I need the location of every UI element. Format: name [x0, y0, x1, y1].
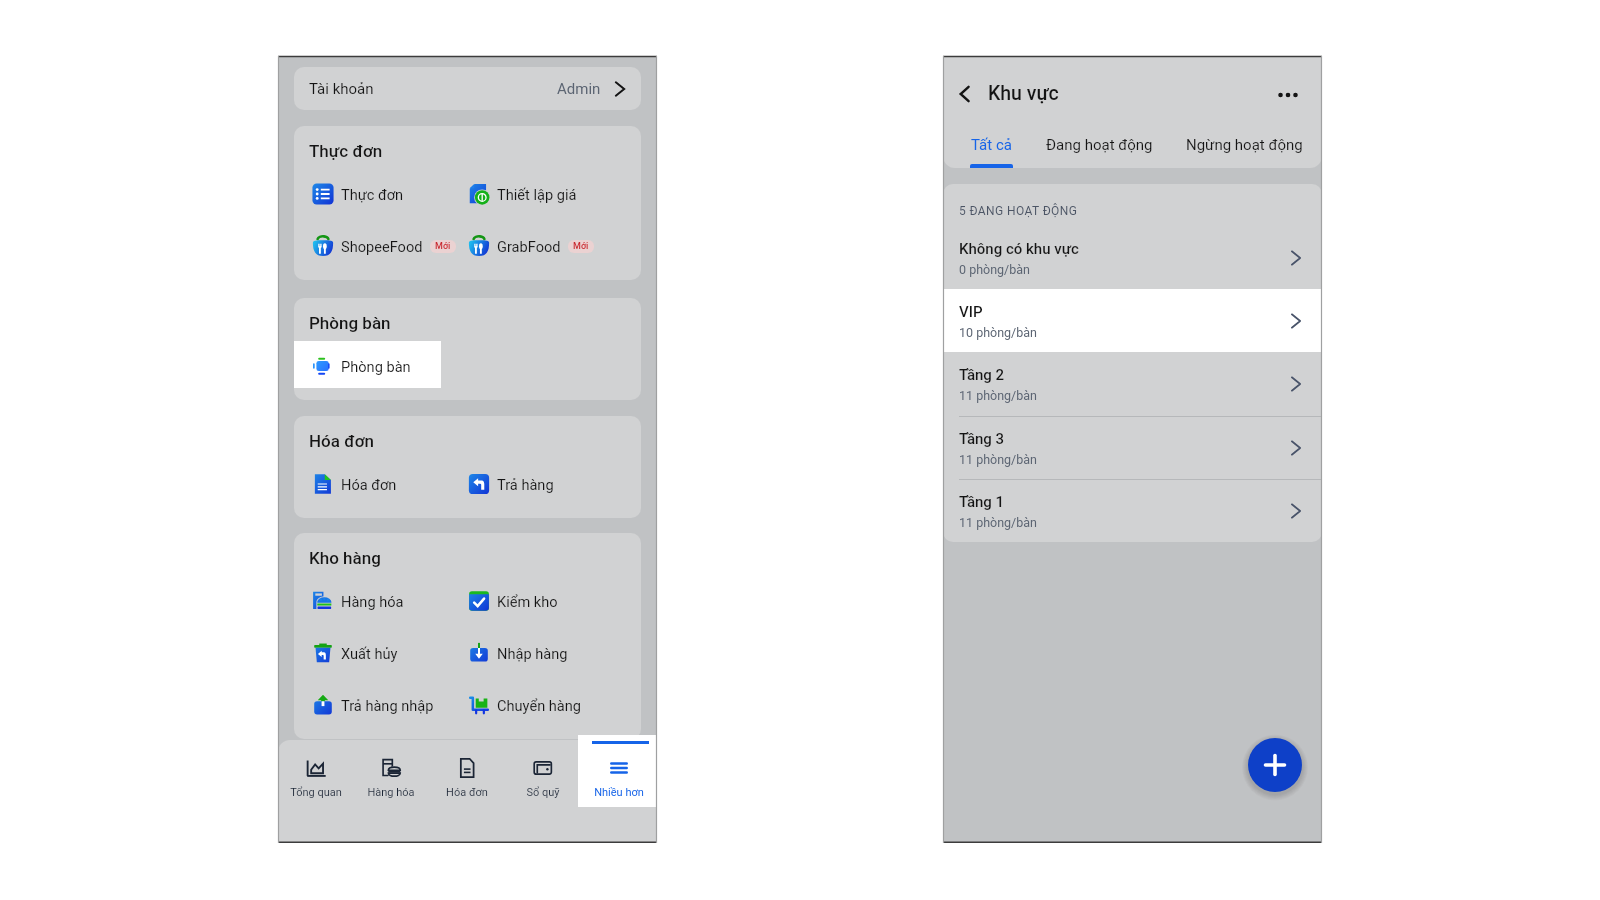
- staticText: Trả hàng: [497, 476, 554, 493]
- staticText: Hàng hóa: [341, 593, 404, 610]
- button[interactable]: Sổ quỹ: [505, 740, 581, 812]
- button[interactable]: Nhập hàng: [450, 627, 641, 679]
- button[interactable]: Thực đơn: [294, 168, 450, 220]
- staticText: Nhiều hơn: [594, 786, 644, 799]
- button[interactable]: Hàng hóa: [294, 575, 450, 627]
- button[interactable]: Phòng bàn: [294, 340, 450, 392]
- button[interactable]: Tài khoản: [294, 67, 641, 110]
- staticText: Tầng 2: [959, 366, 1005, 384]
- button[interactable]: Tổng quan: [278, 740, 353, 812]
- staticText: Xuất hủy: [341, 645, 398, 662]
- button[interactable]: Xuất hủy: [294, 627, 450, 679]
- staticText: Đang hoạt động: [1046, 136, 1153, 154]
- button[interactable]: Trả hàng: [450, 458, 641, 510]
- button[interactable]: Nhiều hơn: [581, 740, 657, 812]
- button[interactable]: Chuyển hàng: [450, 679, 641, 731]
- staticText: Admin: [557, 80, 601, 98]
- button[interactable]: Tầng 1: [943, 479, 1322, 542]
- staticText: 5 ĐANG HOẠT ĐỘNG: [959, 204, 1078, 218]
- staticText: Tầng 3: [959, 430, 1005, 448]
- staticText: Kho hàng: [309, 548, 381, 568]
- staticText: Trả hàng nhập: [341, 697, 434, 714]
- button[interactable]: Kiểm kho: [450, 575, 641, 627]
- staticText: Tầng 1: [959, 493, 1005, 511]
- button[interactable]: Hóa đơn: [294, 458, 450, 510]
- staticText: 10 phòng/bàn: [959, 325, 1037, 340]
- button[interactable]: Tầng 3: [943, 416, 1322, 479]
- button[interactable]: ShopeeFood: [294, 220, 450, 272]
- staticText: Không có khu vực: [959, 240, 1079, 258]
- staticText: GrabFood: [497, 238, 561, 255]
- staticText: Phòng bàn: [341, 358, 411, 375]
- button[interactable]: Trả hàng nhập: [294, 679, 450, 731]
- staticText: Chuyển hàng: [497, 697, 582, 714]
- button[interactable]: Ngừng hoạt động: [1186, 136, 1303, 154]
- staticText: Sổ quỹ: [526, 786, 560, 799]
- staticText: Tất cả: [971, 136, 1012, 154]
- button[interactable]: Không có khu vực: [943, 226, 1322, 289]
- staticText: Thực đơn: [309, 141, 383, 161]
- staticText: Hóa đơn: [309, 431, 374, 451]
- button[interactable]: Tất cả: [971, 136, 1012, 154]
- button[interactable]: Thiết lập giá: [450, 168, 641, 220]
- staticText: Hóa đơn: [446, 786, 488, 799]
- staticText: Nhập hàng: [497, 645, 568, 662]
- button[interactable]: More options: [1273, 80, 1303, 110]
- staticText: Mới: [435, 241, 451, 252]
- staticText: Phòng bàn: [309, 313, 391, 333]
- staticText: Khu vực: [988, 82, 1059, 105]
- staticText: 11 phòng/bàn: [959, 452, 1037, 467]
- button[interactable]: Tầng 2: [943, 352, 1322, 415]
- button[interactable]: Hóa đơn: [429, 740, 505, 812]
- button[interactable]: VIP: [943, 289, 1322, 352]
- staticText: Kiểm kho: [497, 593, 558, 610]
- button[interactable]: Đang hoạt động: [1046, 136, 1153, 154]
- staticText: Hóa đơn: [341, 476, 397, 493]
- button[interactable]: Add: [1248, 738, 1302, 792]
- staticText: Ngừng hoạt động: [1186, 136, 1303, 154]
- staticText: Thiết lập giá: [497, 186, 577, 203]
- staticText: Tài khoản: [309, 80, 374, 98]
- staticText: 11 phòng/bàn: [959, 388, 1037, 403]
- staticText: ShopeeFood: [341, 238, 423, 255]
- staticText: Hàng hóa: [367, 786, 415, 799]
- button[interactable]: GrabFood: [450, 220, 641, 272]
- button[interactable]: Back: [952, 81, 978, 107]
- button[interactable]: Hàng hóa: [353, 740, 429, 812]
- staticText: 0 phòng/bàn: [959, 262, 1030, 277]
- staticText: VIP: [959, 303, 983, 321]
- staticText: Mới: [573, 241, 589, 252]
- staticText: Thực đơn: [341, 186, 404, 203]
- staticText: 11 phòng/bàn: [959, 515, 1037, 530]
- staticText: Tổng quan: [290, 786, 342, 799]
